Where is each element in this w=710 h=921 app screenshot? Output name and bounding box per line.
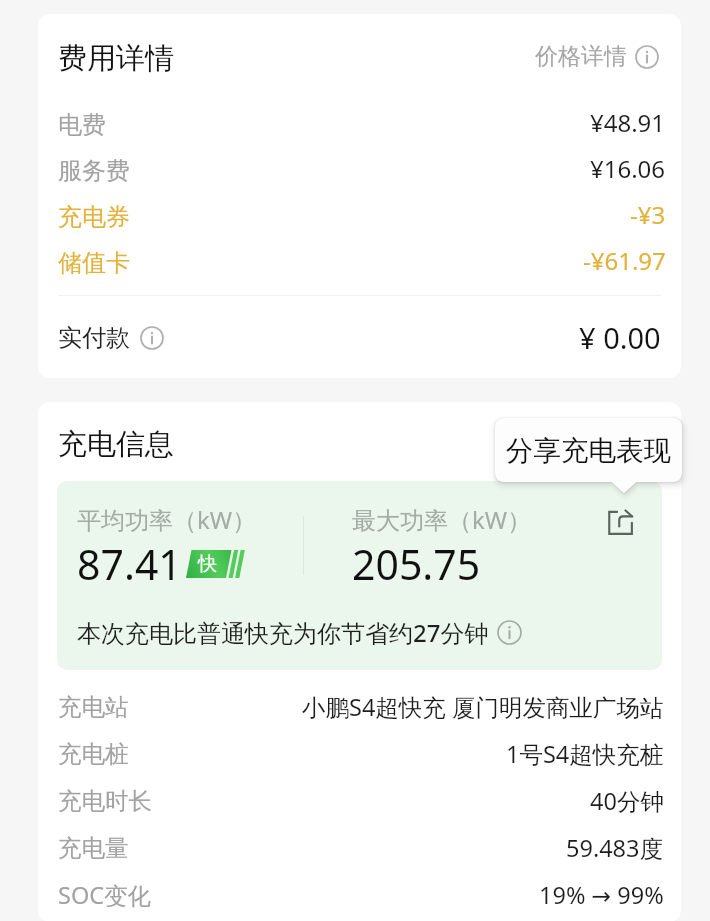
staticText: 储值卡 [58, 248, 130, 278]
button[interactable]: 充电站 [58, 683, 661, 730]
staticText: 费用详情 [58, 40, 174, 77]
staticText: 最大功率（kW） [352, 503, 532, 536]
staticText: 平均功率（kW） [77, 503, 257, 536]
staticText: ¥ 0.00 [579, 318, 661, 357]
staticText: 实付款 [58, 323, 130, 353]
staticText: -¥61.97 [583, 244, 666, 277]
staticText: 87.41 [77, 536, 182, 592]
button[interactable]: 充电桩 [58, 730, 661, 777]
button[interactable]: 价格详情 [535, 42, 659, 71]
staticText: ¥48.91 [590, 106, 666, 139]
staticText: 1号S4超快充桩 [506, 738, 664, 770]
staticText: 充电站 [58, 692, 129, 722]
button[interactable]: 储值卡 [58, 240, 661, 286]
staticText: 小鹏S4超快充 厦门明发商业广场站 [302, 691, 664, 723]
staticText: 充电券 [58, 202, 130, 232]
staticText: 价格详情 [535, 42, 627, 71]
staticText: 服务费 [58, 156, 130, 186]
staticText: 40分钟 [590, 785, 664, 817]
button[interactable]: 服务费 [58, 148, 661, 194]
button[interactable]: 电费 [58, 102, 661, 148]
staticText: 分享充电表现 [506, 434, 671, 469]
staticText: 充电桩 [58, 739, 129, 769]
staticText: -¥3 [630, 198, 666, 231]
staticText: 本次充电比普通快充为你节省约27分钟 [77, 616, 489, 649]
staticText: 19% → 99% [539, 879, 664, 911]
staticText: 充电信息 [58, 426, 174, 463]
staticText: 充电时长 [58, 786, 152, 816]
button[interactable]: 实付款 [58, 318, 661, 357]
staticText: 205.75 [352, 536, 481, 592]
button[interactable]: 充电券 [58, 194, 661, 240]
button[interactable]: 分享充电表现 [495, 418, 682, 493]
staticText: SOC变化 [58, 879, 152, 911]
staticText: ¥16.06 [590, 152, 666, 185]
staticText: 电费 [58, 110, 106, 140]
button[interactable]: 充电量 [58, 824, 661, 871]
staticText: 快 [198, 552, 217, 576]
staticText: 充电量 [58, 833, 129, 863]
staticText: 59.483度 [566, 832, 664, 864]
button[interactable]: 充电时长 [58, 777, 661, 824]
button[interactable]: 分享充电表现 [600, 502, 640, 542]
button[interactable]: SOC变化 [58, 871, 661, 918]
